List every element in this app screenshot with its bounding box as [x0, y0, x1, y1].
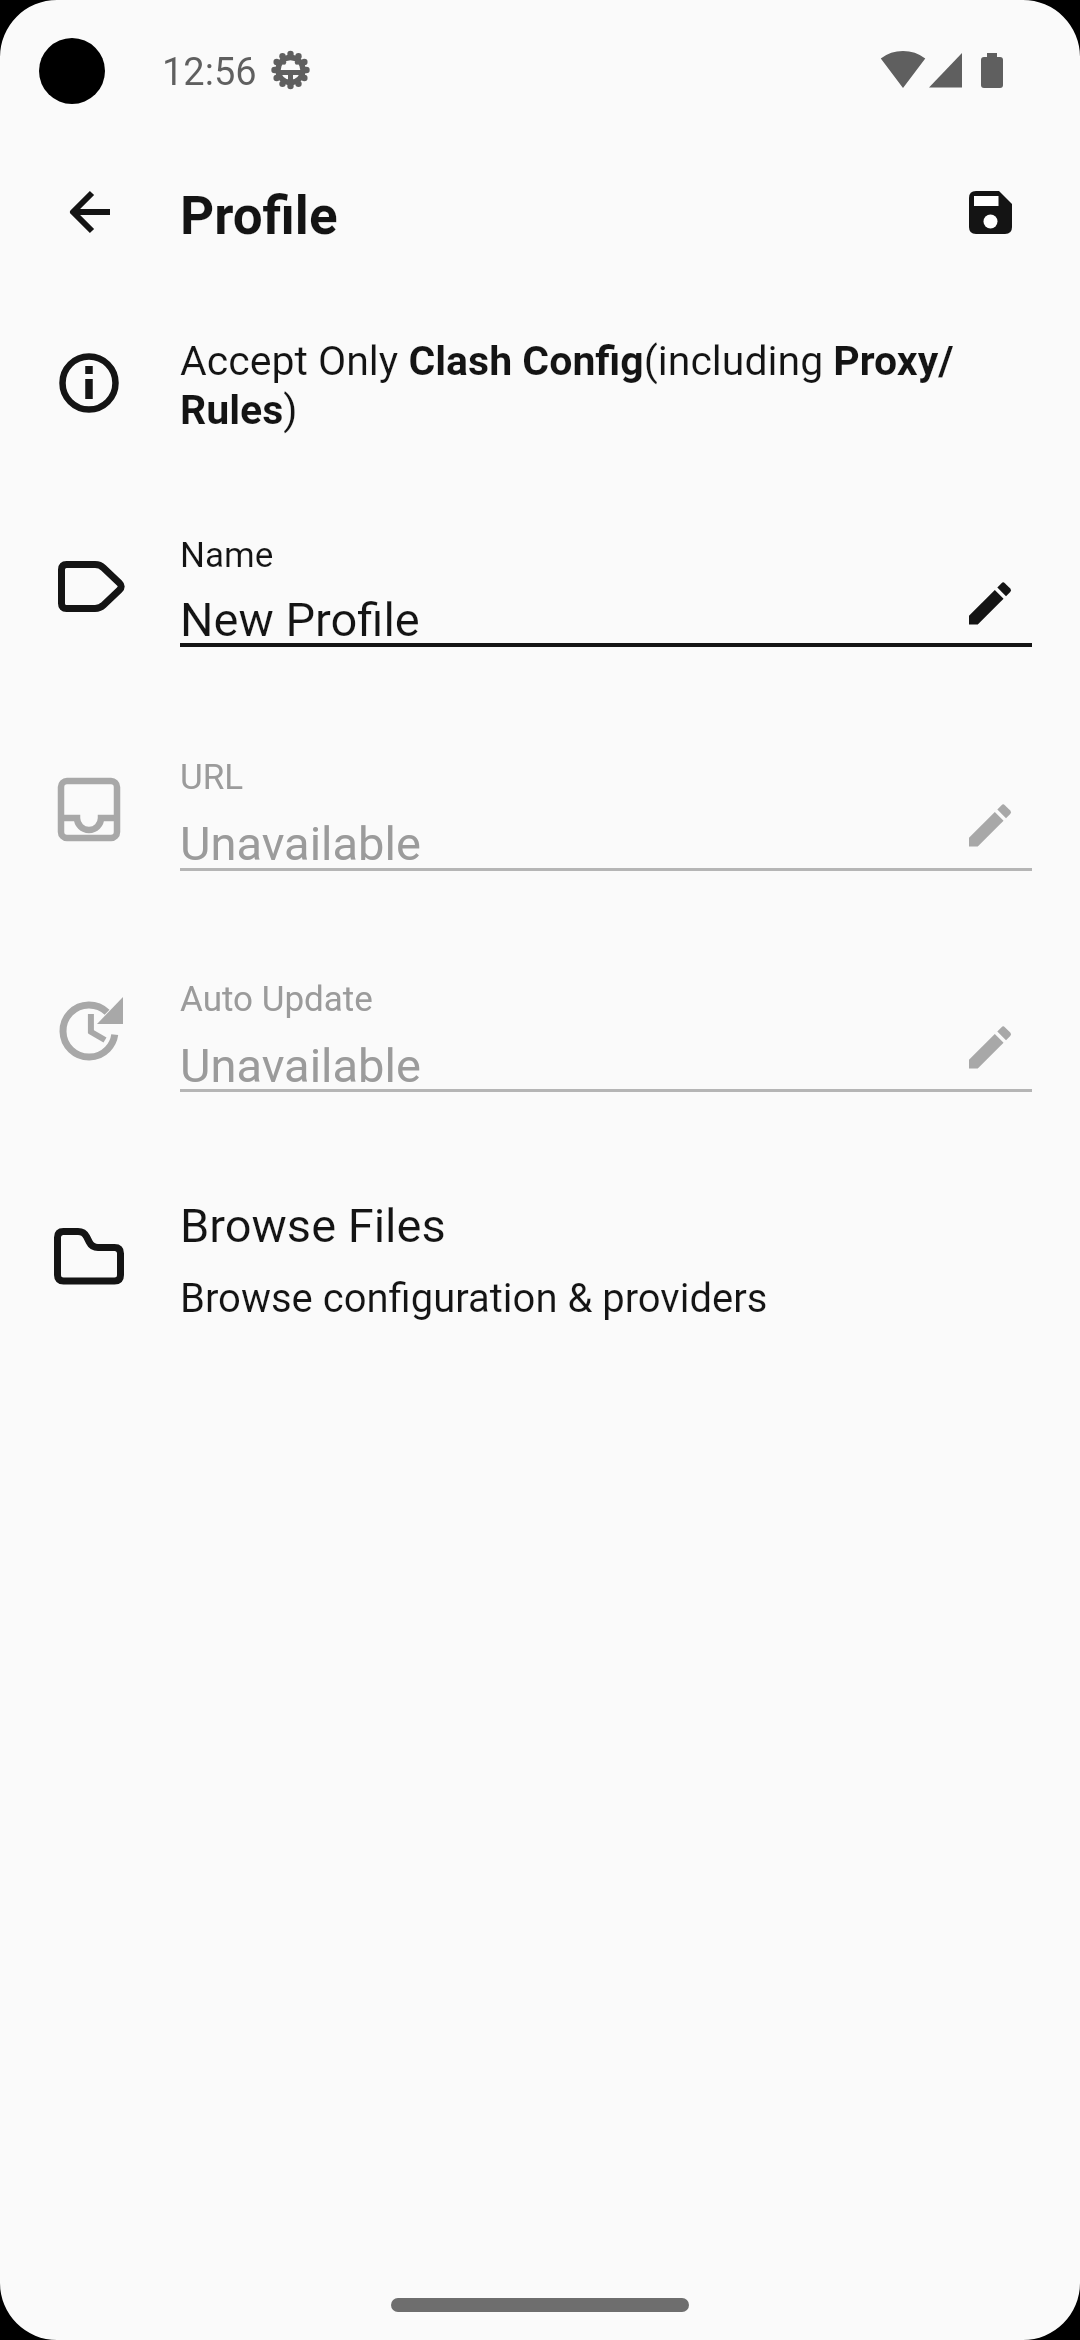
- button[interactable]: [0, 732, 1080, 882]
- staticText: Rules): [180, 386, 298, 434]
- staticText: Auto Update: [180, 979, 373, 1020]
- staticText: Browse configuration & providers: [180, 1275, 768, 1322]
- staticText: Unavailable: [180, 816, 421, 871]
- staticText: URL: [180, 757, 244, 798]
- staticText: Browse Files: [180, 1198, 446, 1253]
- button[interactable]: [0, 1180, 1080, 1310]
- button[interactable]: [0, 954, 1080, 1104]
- staticText: Name: [180, 535, 274, 576]
- button[interactable]: [954, 176, 1026, 248]
- button[interactable]: [0, 510, 1080, 660]
- staticText: Accept Only Clash Config(including Proxy…: [180, 337, 954, 385]
- staticText: Profile: [180, 185, 338, 247]
- staticText: New Profile: [180, 592, 420, 647]
- staticText: 12:56: [162, 50, 257, 95]
- button[interactable]: [54, 176, 126, 248]
- staticText: Unavailable: [180, 1038, 421, 1093]
